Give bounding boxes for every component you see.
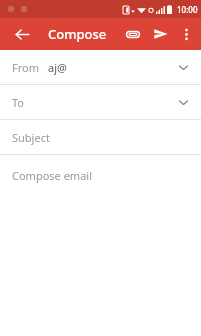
button[interactable]: Expand xyxy=(173,57,193,77)
button[interactable]: More options xyxy=(175,23,197,45)
button[interactable]: Attach file xyxy=(119,20,147,48)
staticText: Subject xyxy=(12,130,50,145)
staticText: aj@ xyxy=(48,60,67,75)
staticText: 10:00 xyxy=(177,4,198,15)
staticText: Compose xyxy=(48,25,107,43)
staticText: From xyxy=(12,60,39,75)
staticText: Compose email xyxy=(12,168,92,183)
button[interactable]: From xyxy=(0,50,201,84)
button[interactable]: Subject xyxy=(0,120,201,154)
button[interactable]: Expand xyxy=(173,92,193,112)
button[interactable]: Send xyxy=(147,20,175,48)
button[interactable]: Compose email xyxy=(0,155,201,195)
button[interactable]: To xyxy=(0,85,201,119)
staticText: To xyxy=(12,95,25,110)
button[interactable]: Navigate up xyxy=(9,21,35,47)
